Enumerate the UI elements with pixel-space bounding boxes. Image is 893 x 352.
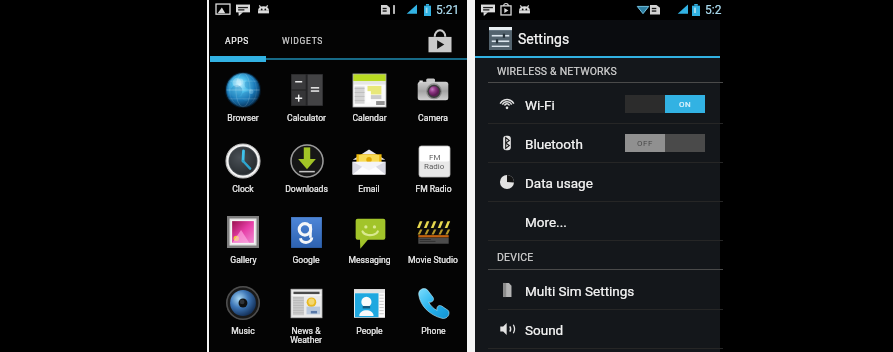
- button[interactable]: Movie Studio: [402, 208, 464, 279]
- button[interactable]: Downloads: [275, 137, 337, 208]
- staticText: OFF: [637, 139, 653, 148]
- button[interactable]: APPS: [222, 32, 253, 50]
- button[interactable]: Wi-Fi: [475, 85, 720, 124]
- button[interactable]: FM: [402, 137, 464, 208]
- staticText: Bluetooth: [525, 136, 583, 152]
- button[interactable]: People: [338, 279, 400, 350]
- staticText: WIRELESS & NETWORKS: [497, 65, 617, 77]
- staticText: FM Radio: [415, 184, 452, 194]
- staticText: ON: [679, 100, 692, 109]
- button[interactable]: Play Store: [425, 26, 455, 56]
- button[interactable]: Calendar: [338, 66, 400, 137]
- button[interactable]: Calculator: [275, 66, 337, 137]
- staticText: Camera: [418, 113, 448, 123]
- staticText: Music: [231, 326, 255, 336]
- button[interactable]: Clock: [212, 137, 274, 208]
- staticText: DEVICE: [497, 251, 534, 263]
- button[interactable]: Browser: [212, 66, 274, 137]
- staticText: Messaging: [348, 255, 391, 265]
- staticText: Browser: [227, 113, 259, 123]
- staticText: 5:21: [436, 3, 460, 17]
- staticText: Clock: [232, 184, 254, 194]
- staticText: Radio: [424, 162, 445, 171]
- staticText: FM: [429, 153, 441, 162]
- staticText: News & Weather: [290, 326, 322, 345]
- button[interactable]: Messaging: [338, 208, 400, 279]
- staticText: Calculator: [287, 113, 326, 123]
- staticText: Data usage: [525, 175, 593, 191]
- staticText: Multi Sim Settings: [525, 283, 635, 299]
- staticText: Sound: [525, 322, 564, 338]
- button[interactable]: Camera: [402, 66, 464, 137]
- staticText: APPS: [225, 36, 250, 46]
- staticText: Google: [292, 255, 320, 265]
- staticText: Gallery: [230, 255, 257, 265]
- button[interactable]: Sound: [475, 310, 720, 349]
- staticText: Movie Studio: [408, 255, 458, 265]
- button[interactable]: Gallery: [212, 208, 274, 279]
- staticText: Calendar: [352, 113, 387, 123]
- button[interactable]: Google: [275, 208, 337, 279]
- button[interactable]: Email: [338, 137, 400, 208]
- button[interactable]: Phone: [402, 279, 464, 350]
- button[interactable]: Multi Sim Settings: [475, 271, 720, 310]
- button[interactable]: News & Weather: [275, 279, 337, 350]
- staticText: WIDGETS: [282, 36, 324, 46]
- staticText: 5:2: [705, 3, 722, 17]
- button[interactable]: WIDGETS: [280, 32, 325, 50]
- staticText: Settings: [518, 31, 570, 47]
- button[interactable]: Data usage: [475, 163, 720, 202]
- button[interactable]: Music: [212, 279, 274, 350]
- staticText: Email: [358, 184, 380, 194]
- button[interactable]: Bluetooth: [475, 124, 720, 163]
- staticText: Downloads: [285, 184, 328, 194]
- button[interactable]: More...: [475, 202, 720, 241]
- staticText: Wi-Fi: [525, 97, 555, 113]
- staticText: More...: [525, 214, 567, 230]
- staticText: Phone: [421, 326, 446, 336]
- staticText: People: [356, 326, 383, 336]
